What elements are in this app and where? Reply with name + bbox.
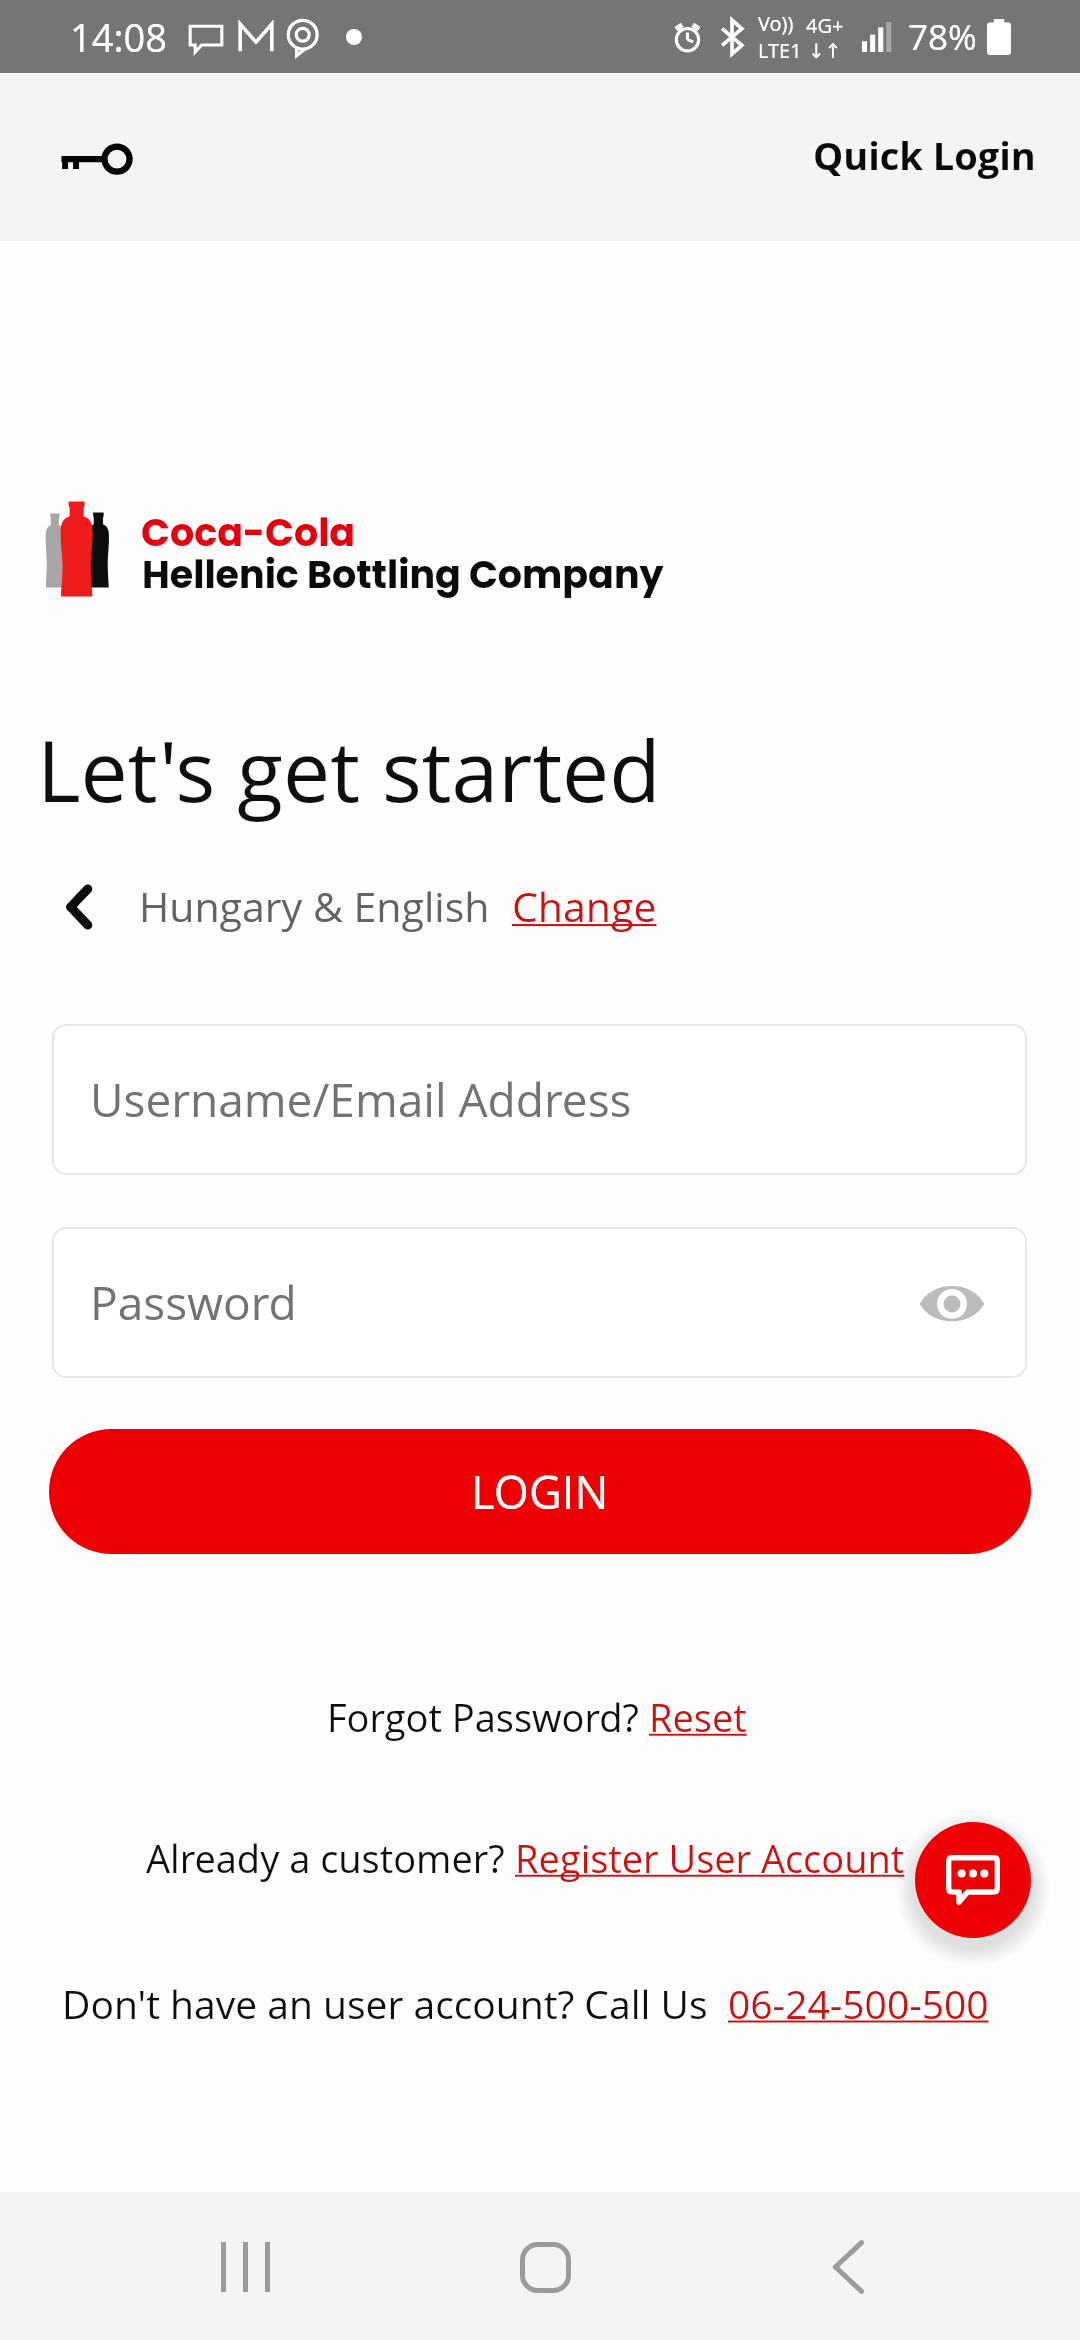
- staticText: Hellenic Bottling Company: [142, 548, 664, 601]
- button[interactable]: Home: [490, 2212, 600, 2322]
- staticText: Username/Email Address: [90, 1068, 632, 1131]
- staticText: Coca-Cola: [141, 506, 356, 559]
- button[interactable]: Username/Email Address: [52, 1024, 1027, 1175]
- staticText: Forgot Password?: [327, 1691, 649, 1743]
- staticText: Register User Account: [515, 1832, 905, 1884]
- button[interactable]: Register User Account: [515, 1832, 905, 1884]
- staticText: 78%: [908, 13, 977, 61]
- staticText: ↓↑: [808, 39, 842, 62]
- staticText: Quick Login: [813, 129, 1036, 181]
- button[interactable]: Quick Login: [791, 115, 1058, 195]
- button[interactable]: Password key: [48, 113, 144, 209]
- button[interactable]: Password: [52, 1227, 1027, 1378]
- button[interactable]: Show password: [917, 1268, 987, 1338]
- staticText: Password: [90, 1271, 297, 1334]
- staticText: Vo)): [758, 10, 794, 37]
- staticText: Don't have an user account? Call Us: [62, 1977, 728, 2030]
- staticText: Already a customer?: [146, 1832, 515, 1884]
- staticText: Hungary & English: [139, 878, 490, 934]
- staticText: LOGIN: [471, 1461, 609, 1522]
- button[interactable]: Back: [66, 877, 92, 935]
- button[interactable]: Reset: [649, 1691, 747, 1743]
- button[interactable]: LOGIN: [49, 1429, 1031, 1554]
- button[interactable]: Change: [512, 878, 657, 934]
- button[interactable]: Back: [793, 2212, 903, 2322]
- staticText: Let's get started: [37, 712, 661, 826]
- button[interactable]: Chat support: [915, 1822, 1031, 1938]
- staticText: Reset: [649, 1691, 747, 1743]
- button[interactable]: Recent apps: [190, 2212, 300, 2322]
- staticText: Change: [512, 878, 657, 934]
- staticText: 06-24-500-500: [728, 1977, 989, 2030]
- staticText: 4G+: [806, 12, 844, 39]
- button[interactable]: 06-24-500-500: [728, 1977, 989, 2030]
- staticText: LTE1: [758, 37, 802, 64]
- staticText: 14:08: [70, 11, 168, 63]
